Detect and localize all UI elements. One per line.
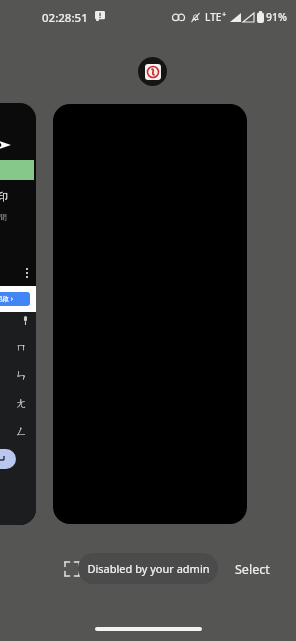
button[interactable]: Enter xyxy=(0,449,16,469)
staticText: Select xyxy=(235,561,270,578)
button[interactable]: ㄇ xyxy=(16,340,28,354)
staticText: + xyxy=(222,9,227,19)
staticText: Disabled by your admin xyxy=(87,561,210,576)
button[interactable]: ㄥ xyxy=(16,424,28,438)
button[interactable]: Screenshot xyxy=(61,558,83,580)
staticText: 02:28:51 xyxy=(42,10,88,26)
staticText: 入浮水印 xyxy=(0,190,8,203)
staticText: 91% xyxy=(266,10,287,24)
button[interactable]: ㄤ xyxy=(16,396,28,410)
staticText: 0.25 P 間 xyxy=(0,211,7,222)
staticText: LTE xyxy=(205,10,222,24)
button[interactable]: App icon xyxy=(138,57,167,86)
button[interactable]: ㄣ xyxy=(16,368,28,382)
button[interactable]: Select xyxy=(235,561,270,578)
staticText: 開啟 › xyxy=(0,294,13,304)
button[interactable]: $ xyxy=(0,103,36,525)
button[interactable]: Recent app preview xyxy=(53,104,247,524)
